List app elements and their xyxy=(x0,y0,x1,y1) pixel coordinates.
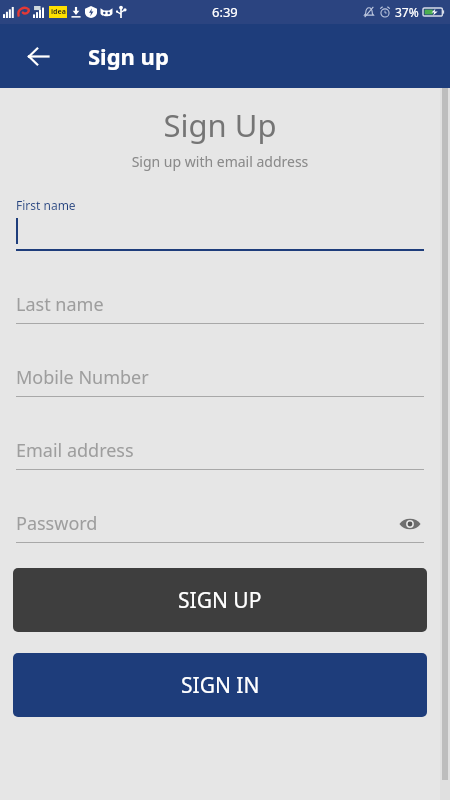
staticText: 6:39 xyxy=(212,3,238,21)
staticText: Sign up with email address xyxy=(0,152,440,171)
staticText: Sign Up xyxy=(0,104,440,146)
button[interactable]: Back xyxy=(14,32,62,80)
staticText: Email address xyxy=(16,438,134,463)
staticText: First name xyxy=(16,197,76,213)
button[interactable]: Password xyxy=(16,505,424,543)
staticText: SIGN IN xyxy=(181,671,260,700)
staticText: Mobile Number xyxy=(16,365,149,390)
staticText: 37% xyxy=(395,4,419,20)
staticText: Last name xyxy=(16,292,104,317)
button[interactable]: Last name xyxy=(16,286,424,324)
button[interactable]: SIGN IN xyxy=(13,653,427,717)
button[interactable]: Show password xyxy=(396,510,424,538)
staticText: idea xyxy=(51,7,66,17)
staticText: SIGN UP xyxy=(178,586,262,615)
button[interactable]: SIGN UP xyxy=(13,568,427,632)
button[interactable]: First name xyxy=(16,197,424,251)
staticText: Password xyxy=(16,511,98,536)
staticText: Sign up xyxy=(88,41,169,71)
button[interactable]: Email address xyxy=(16,432,424,470)
button[interactable]: Mobile Number xyxy=(16,359,424,397)
